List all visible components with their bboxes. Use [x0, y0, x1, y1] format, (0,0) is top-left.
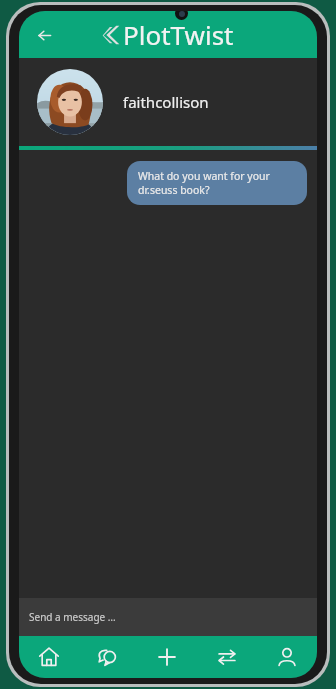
staticText: faithcollison — [123, 92, 209, 112]
staticText: Send a message … — [29, 610, 116, 624]
button[interactable]: Profile — [257, 636, 317, 678]
button[interactable]: Add — [137, 636, 197, 678]
button[interactable]: Send a message … — [19, 598, 317, 636]
staticText: What do you want for your dr.seuss book? — [138, 169, 296, 197]
button[interactable]: Back — [27, 18, 61, 52]
button[interactable]: What do you want for your dr.seuss book? — [127, 161, 307, 205]
staticText: PlotTwist — [123, 17, 234, 52]
button[interactable]: Swap — [197, 636, 257, 678]
button[interactable]: Chats — [78, 636, 137, 678]
button[interactable]: faithcollison — [19, 58, 317, 146]
button[interactable]: Home — [19, 636, 78, 678]
